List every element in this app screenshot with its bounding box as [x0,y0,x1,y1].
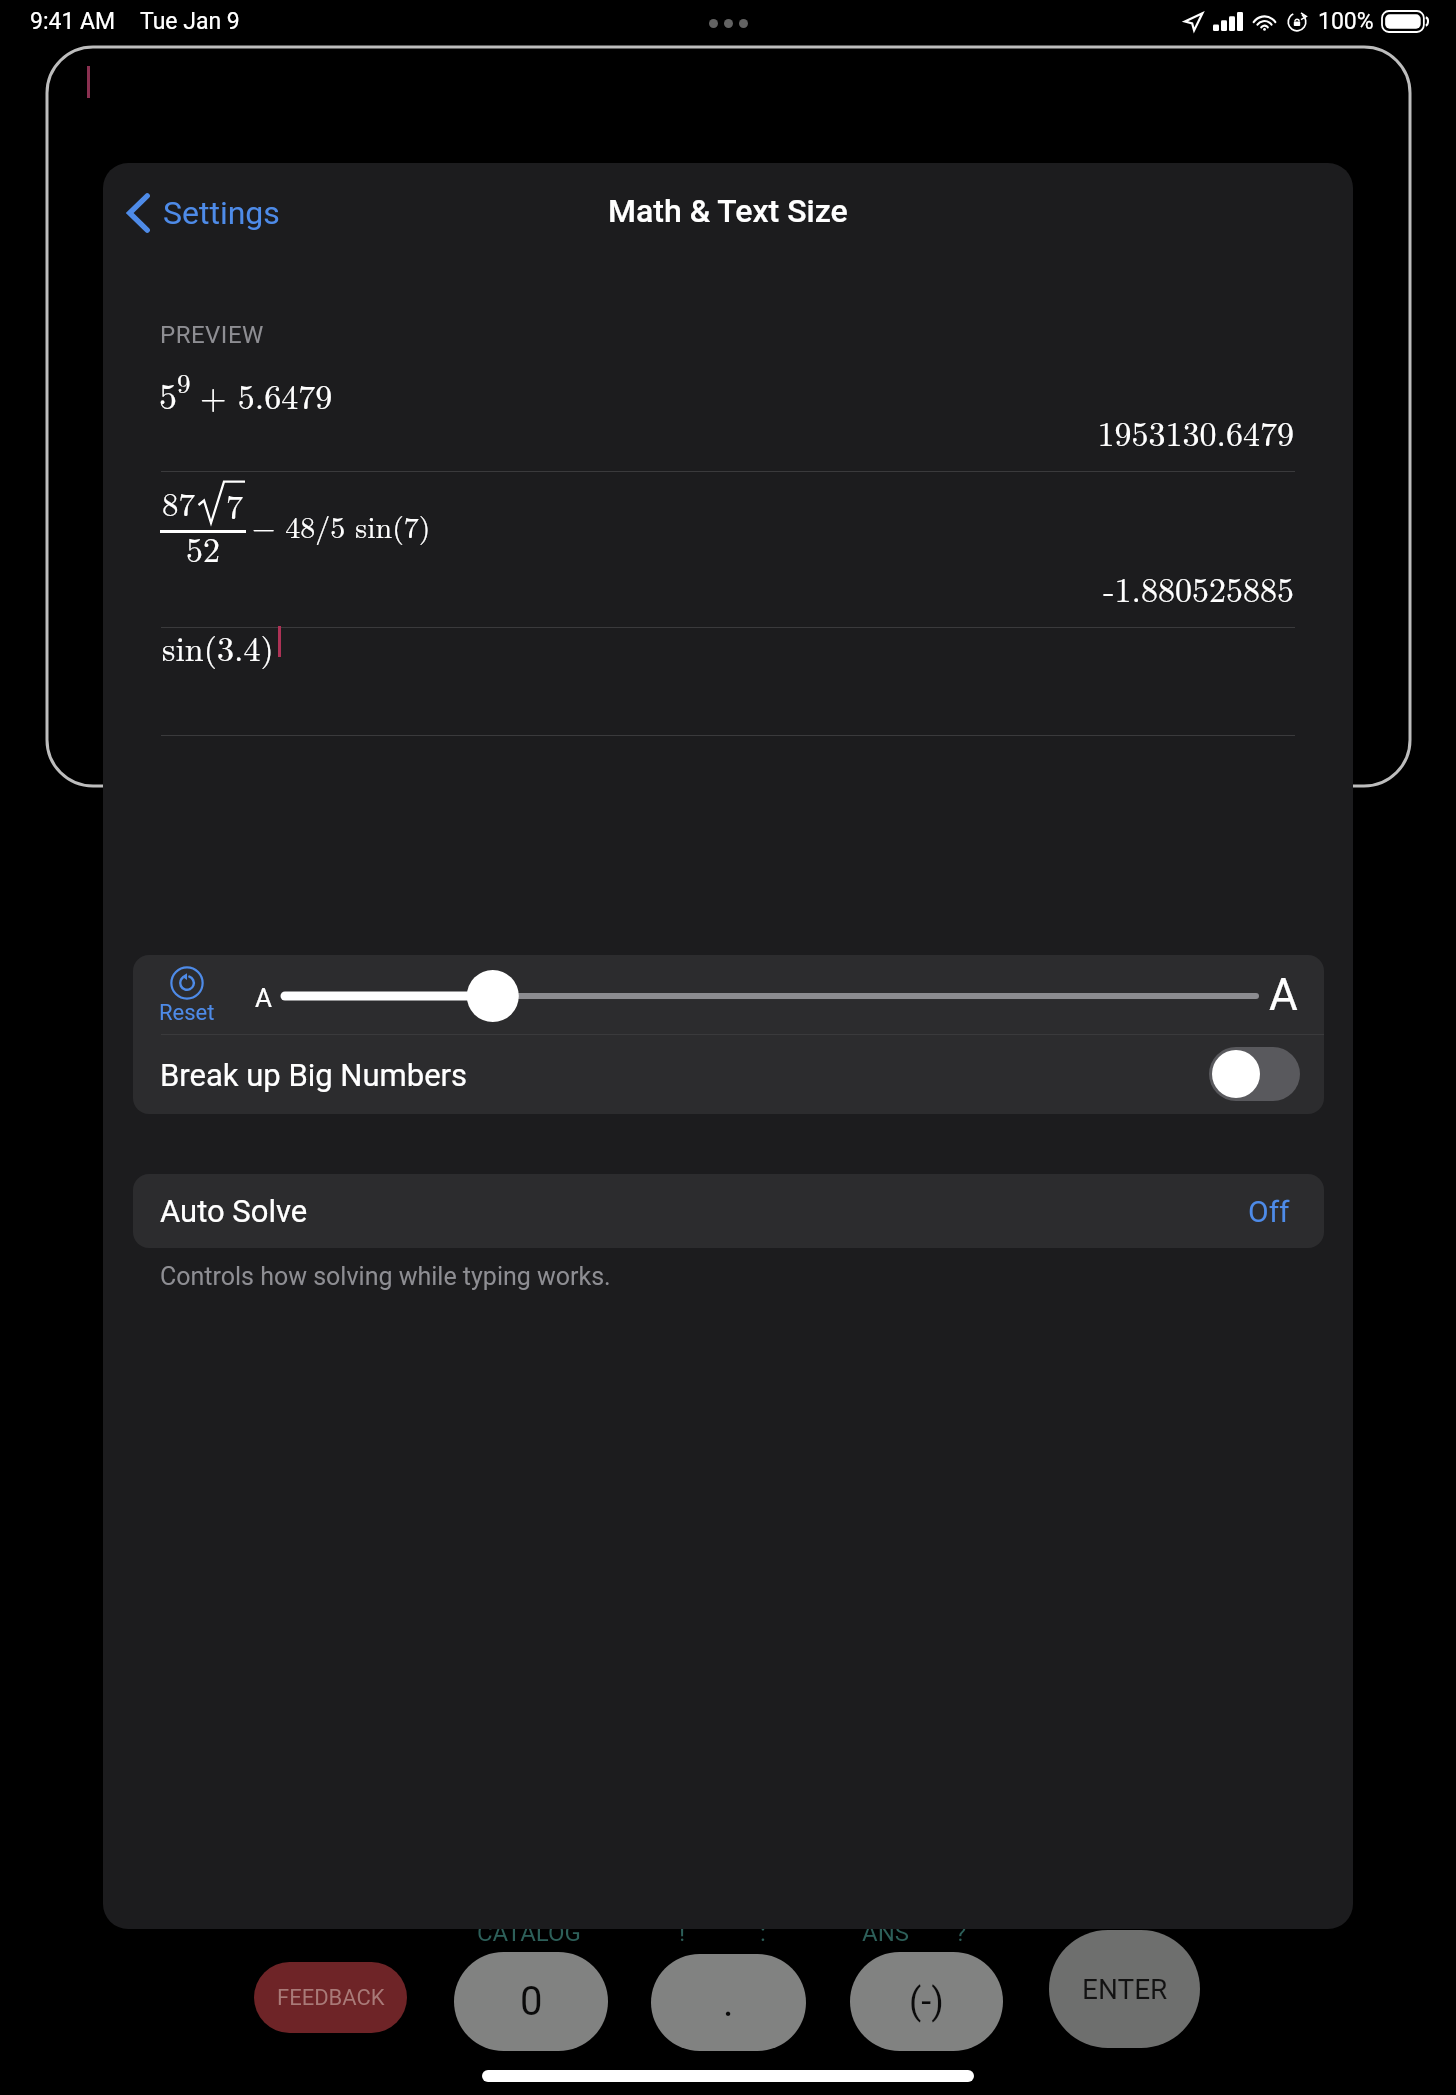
staticText: 52 [186,524,220,572]
button[interactable]: Settings [117,186,290,240]
button[interactable]: FEEDBACK [254,1962,407,2033]
staticText: + 5.6479 [200,371,333,419]
button[interactable]: Break up Big Numbers [133,1035,1324,1114]
staticText: Math & Text Size [608,192,848,230]
staticText: 7 [226,481,243,529]
staticText: A [255,983,272,1013]
button[interactable]: Text size slider [285,974,1256,1018]
staticText: Off [1248,1194,1290,1229]
staticText: 87 [162,479,195,526]
button[interactable]: Auto Solve [133,1174,1324,1248]
staticText: ! [679,1919,686,1947]
staticText: . [723,1979,734,2026]
staticText: ANS [862,1919,910,1947]
staticText: ? [955,1919,967,1947]
staticText: Settings [163,194,280,232]
staticText: CATALOG [477,1919,581,1947]
staticText: FEEDBACK [277,1985,385,2011]
staticText: Break up Big Numbers [160,1057,468,1093]
staticText: PREVIEW [160,321,264,349]
button[interactable]: . [651,1954,806,2051]
staticText: ENTER [1082,1973,1168,2006]
button[interactable]: (-) [850,1952,1003,2051]
staticText: Controls how solving while typing works. [160,1262,611,1291]
staticText: Reset [159,1000,215,1026]
staticText: 5 [159,368,177,419]
staticText: A [1269,969,1298,1021]
button[interactable]: Reset [156,963,218,1026]
staticText: − 48/5 sin(7) [252,504,431,547]
staticText: 1953130.6479 [103,408,1294,456]
staticText: : [760,1919,766,1947]
staticText: 9 [177,363,191,401]
button[interactable]: ENTER [1049,1930,1200,2048]
staticText: Tue Jan 9 [140,8,240,35]
staticText: 9:41 AM [30,8,116,35]
staticText: -1.880525885 [103,564,1294,612]
staticText: sin(3.4) [162,623,274,671]
staticText: 100% [1318,8,1374,35]
staticText: 0 [520,1978,543,2025]
staticText: Auto Solve [160,1193,308,1229]
staticText: (-) [909,1981,944,2023]
button[interactable]: 0 [454,1952,608,2051]
